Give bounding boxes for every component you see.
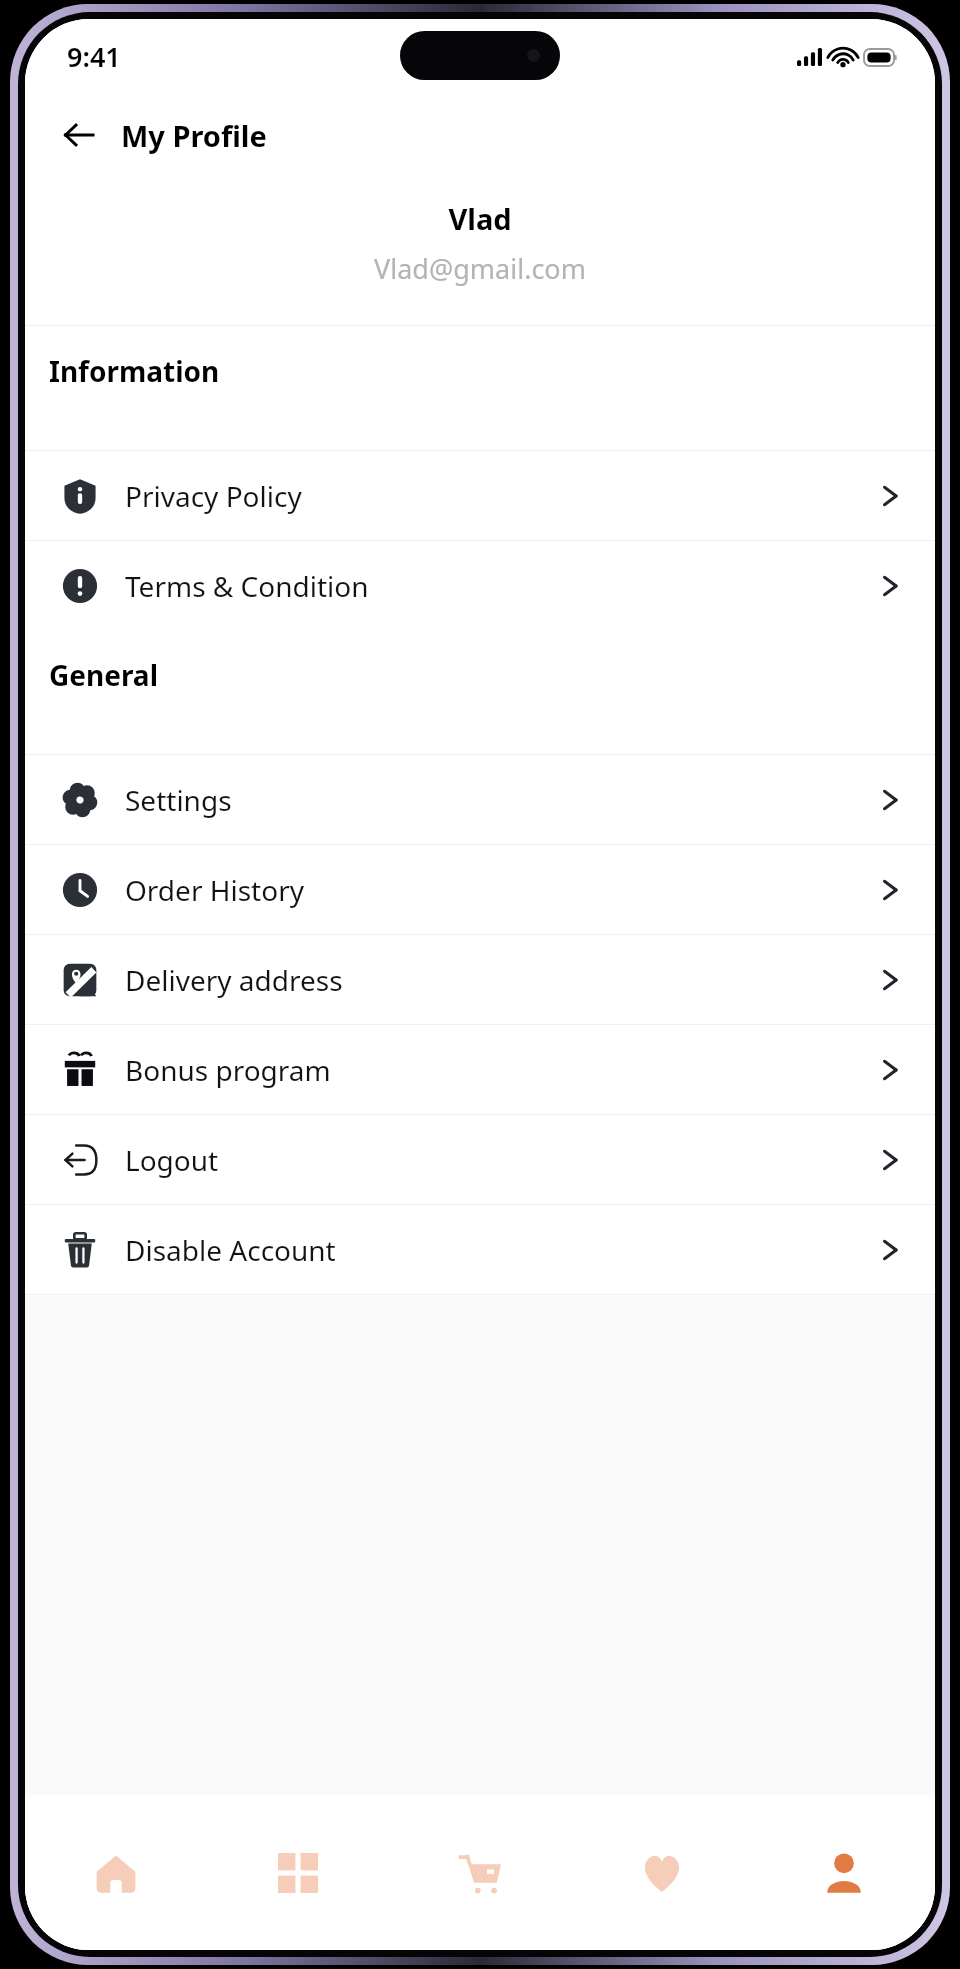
staticText: Settings: [125, 781, 879, 819]
button[interactable]: Disable Account: [25, 1205, 935, 1294]
staticText: Bonus program: [125, 1051, 879, 1089]
button[interactable]: Favorites: [571, 1795, 753, 1950]
staticText: Information: [49, 352, 220, 390]
staticText: Disable Account: [125, 1231, 879, 1269]
staticText: Order History: [125, 871, 879, 909]
staticText: Terms & Condition: [125, 567, 879, 605]
staticText: Vlad@gmail.com: [374, 250, 586, 287]
button[interactable]: Categories: [207, 1795, 389, 1950]
staticText: Logout: [125, 1141, 879, 1179]
staticText: My Profile: [121, 116, 267, 155]
staticText: Privacy Policy: [125, 477, 879, 515]
button[interactable]: Privacy Policy: [25, 451, 935, 540]
staticText: 9:41: [67, 38, 121, 75]
button[interactable]: Settings: [25, 755, 935, 844]
staticText: Vlad: [448, 199, 512, 238]
button[interactable]: Terms & Condition: [25, 541, 935, 630]
button[interactable]: Bonus program: [25, 1025, 935, 1114]
button[interactable]: Logout: [25, 1115, 935, 1204]
button[interactable]: Cart: [389, 1795, 571, 1950]
staticText: Delivery address: [125, 961, 879, 999]
button[interactable]: Back: [51, 107, 107, 163]
staticText: General: [49, 656, 158, 694]
button[interactable]: Home: [25, 1795, 207, 1950]
button[interactable]: Delivery address: [25, 935, 935, 1024]
button[interactable]: Profile: [753, 1795, 935, 1950]
button[interactable]: Order History: [25, 845, 935, 934]
